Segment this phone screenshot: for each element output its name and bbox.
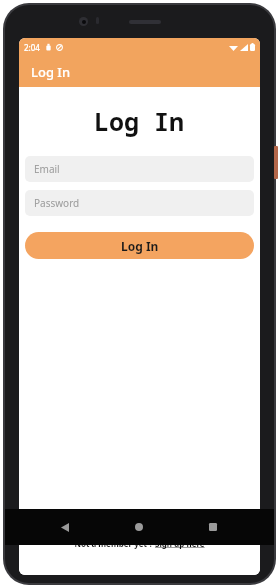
staticText: Email (34, 162, 60, 176)
button[interactable]: Password (25, 190, 254, 216)
button[interactable]: Not a member yet ? Sign up here (25, 538, 254, 549)
staticText: Log In (94, 104, 185, 138)
button[interactable]: Back (52, 514, 78, 540)
staticText: Not a member yet ? Sign up here (74, 538, 205, 549)
staticText: Password (34, 196, 80, 210)
button[interactable]: Home (126, 514, 152, 540)
button[interactable]: Recents (200, 514, 226, 540)
staticText: Log In (31, 63, 71, 81)
staticText: 2:04 (24, 42, 40, 53)
staticText: Log In (121, 238, 159, 254)
button[interactable]: Log In (25, 232, 254, 259)
button[interactable]: Email (25, 156, 254, 182)
